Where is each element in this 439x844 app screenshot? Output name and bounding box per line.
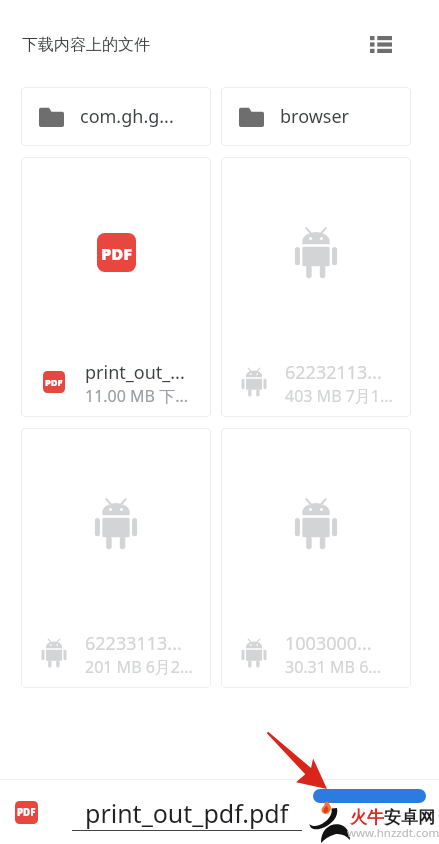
button[interactable]: com.gh.g... (21, 87, 211, 146)
staticText: com.gh.g... (80, 104, 174, 129)
staticText: print_out_pdf.pdf (85, 796, 289, 830)
button[interactable]: 1003000... (221, 428, 411, 688)
staticText: 62233113... (85, 631, 182, 656)
staticText: PDF (101, 242, 133, 264)
staticText: 安卓网 (384, 807, 435, 828)
button[interactable]: PDF file (15, 801, 38, 824)
button[interactable]: 62232113... (221, 157, 411, 417)
button[interactable]: print_out_pdf.pdf (72, 796, 302, 838)
button[interactable]: List view (360, 28, 402, 60)
staticText: print_out_... (85, 360, 185, 385)
staticText: PDF (45, 376, 63, 389)
staticText: 403 MB 7月1... (285, 385, 393, 407)
staticText: www.hnzzdt.com (347, 825, 439, 841)
staticText: 201 MB 6月2... (85, 656, 193, 678)
staticText: 30.31 MB 6... (285, 656, 382, 678)
button[interactable]: Confirm (313, 789, 426, 803)
staticText: PDF (17, 806, 36, 819)
button[interactable]: PDF (21, 157, 211, 417)
staticText: 11.00 MB 下... (85, 385, 188, 407)
staticText: browser (280, 104, 350, 129)
staticText: 下载内容上的文件 (22, 35, 150, 55)
staticText: 火牛 (350, 807, 384, 828)
button[interactable]: 62233113... (21, 428, 211, 688)
button[interactable]: browser (221, 87, 411, 146)
staticText: 62232113... (285, 360, 382, 385)
staticText: 1003000... (285, 631, 372, 656)
